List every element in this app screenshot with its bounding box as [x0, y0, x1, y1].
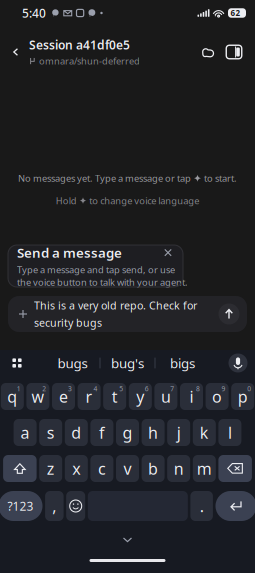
staticText: to change voice language	[89, 194, 199, 207]
staticText: c	[98, 458, 106, 479]
staticText: q	[7, 386, 17, 407]
button[interactable]: i	[180, 383, 203, 410]
staticText: .	[200, 495, 204, 517]
staticText: i	[189, 386, 193, 407]
button[interactable]: Send	[216, 301, 242, 327]
staticText: 1	[17, 384, 21, 393]
button[interactable]: u	[154, 383, 177, 410]
button[interactable]: n	[167, 455, 190, 482]
staticText: s	[47, 422, 55, 443]
staticText: Session a41df0e5	[29, 37, 130, 53]
button[interactable]: h	[142, 419, 165, 446]
staticText: y	[136, 386, 144, 407]
staticText: the voice button to talk with your agent…	[17, 276, 188, 288]
staticText: Hold	[56, 194, 77, 207]
staticText: w	[31, 386, 44, 407]
staticText: bigs	[170, 354, 195, 372]
staticText: ?123	[7, 498, 33, 514]
staticText: b	[148, 458, 158, 479]
staticText: u	[161, 386, 171, 407]
staticText: g	[122, 422, 132, 443]
button[interactable]: Dismiss	[162, 247, 174, 259]
staticText: r	[86, 386, 93, 407]
button[interactable]: l	[218, 419, 241, 446]
button[interactable]: s	[39, 419, 62, 446]
button[interactable]: Emoji	[66, 491, 85, 521]
staticText: Type a message and tap send, or use	[17, 263, 175, 276]
button[interactable]: p	[231, 383, 254, 410]
button[interactable]: j	[167, 419, 190, 446]
button[interactable]: m	[193, 455, 216, 482]
button[interactable]: z	[39, 455, 62, 482]
button[interactable]: Toggle sidebar	[221, 37, 247, 67]
staticText: bugs	[57, 354, 87, 372]
staticText: 4	[93, 384, 97, 393]
staticText: 3	[68, 384, 72, 393]
staticText: k	[200, 422, 209, 443]
button[interactable]: g	[116, 419, 139, 446]
staticText: m	[197, 458, 212, 479]
button[interactable]: Back	[3, 35, 29, 69]
staticText: z	[47, 458, 55, 479]
staticText: bug's	[111, 354, 144, 372]
staticText: No messages yet. Type a message or tap	[18, 172, 191, 184]
button[interactable]: o	[206, 383, 229, 410]
staticText: n	[174, 458, 184, 479]
staticText: v	[123, 458, 131, 479]
staticText: ,	[52, 495, 56, 517]
staticText: Send a message	[17, 244, 122, 261]
button[interactable]: b	[142, 455, 165, 482]
button[interactable]: t	[103, 383, 126, 410]
staticText: 9	[221, 384, 225, 393]
staticText: 0	[247, 384, 251, 393]
staticText: t	[112, 386, 118, 407]
staticText: d	[71, 422, 81, 443]
staticText: 5:40	[22, 5, 46, 21]
staticText: 2	[42, 384, 46, 393]
staticText: 62	[230, 8, 240, 18]
button[interactable]: Symbols	[0, 491, 42, 521]
button[interactable]: Voice input	[226, 352, 250, 374]
button[interactable]: Cloud sync	[195, 37, 221, 67]
button[interactable]: c	[90, 455, 113, 482]
button[interactable]: d	[65, 419, 88, 446]
staticText: x	[72, 458, 80, 479]
staticText: l	[228, 422, 232, 443]
button[interactable]: Delete	[218, 455, 252, 482]
staticText: 8	[196, 384, 200, 393]
staticText: 7	[170, 384, 174, 393]
button[interactable]: f	[90, 419, 113, 446]
button[interactable]: bigs	[155, 352, 209, 374]
button[interactable]: Clipboard	[5, 352, 29, 374]
button[interactable]: Add attachment	[12, 302, 34, 326]
staticText: f	[99, 422, 105, 443]
button[interactable]: y	[129, 383, 152, 410]
staticText: omnara/shun-deferred	[39, 55, 140, 67]
button[interactable]: x	[65, 455, 88, 482]
button[interactable]: Shift	[3, 455, 37, 482]
button[interactable]: r	[78, 383, 101, 410]
staticText: h	[148, 422, 158, 443]
staticText: security bugs	[34, 315, 102, 330]
button[interactable]: Hide keyboard	[107, 533, 147, 547]
staticText: 6	[145, 384, 149, 393]
button[interactable]: k	[193, 419, 216, 446]
button[interactable]: v	[116, 455, 139, 482]
staticText: e	[59, 386, 68, 407]
button[interactable]: w	[26, 383, 49, 410]
staticText: a	[21, 422, 30, 443]
button[interactable]: bugs	[45, 352, 99, 374]
staticText: p	[238, 386, 248, 407]
button[interactable]: e	[52, 383, 75, 410]
button[interactable]: q	[1, 383, 24, 410]
button[interactable]: ,	[45, 491, 64, 521]
button[interactable]: bug's	[100, 352, 154, 374]
button[interactable]: a	[14, 419, 37, 446]
button[interactable]: .	[190, 491, 213, 521]
staticText: to start.	[204, 172, 237, 184]
staticText: This is a very old repo. Check for	[34, 298, 197, 312]
staticText: j	[177, 422, 181, 443]
staticText: 5	[119, 384, 123, 393]
button[interactable]: Enter	[215, 491, 255, 521]
